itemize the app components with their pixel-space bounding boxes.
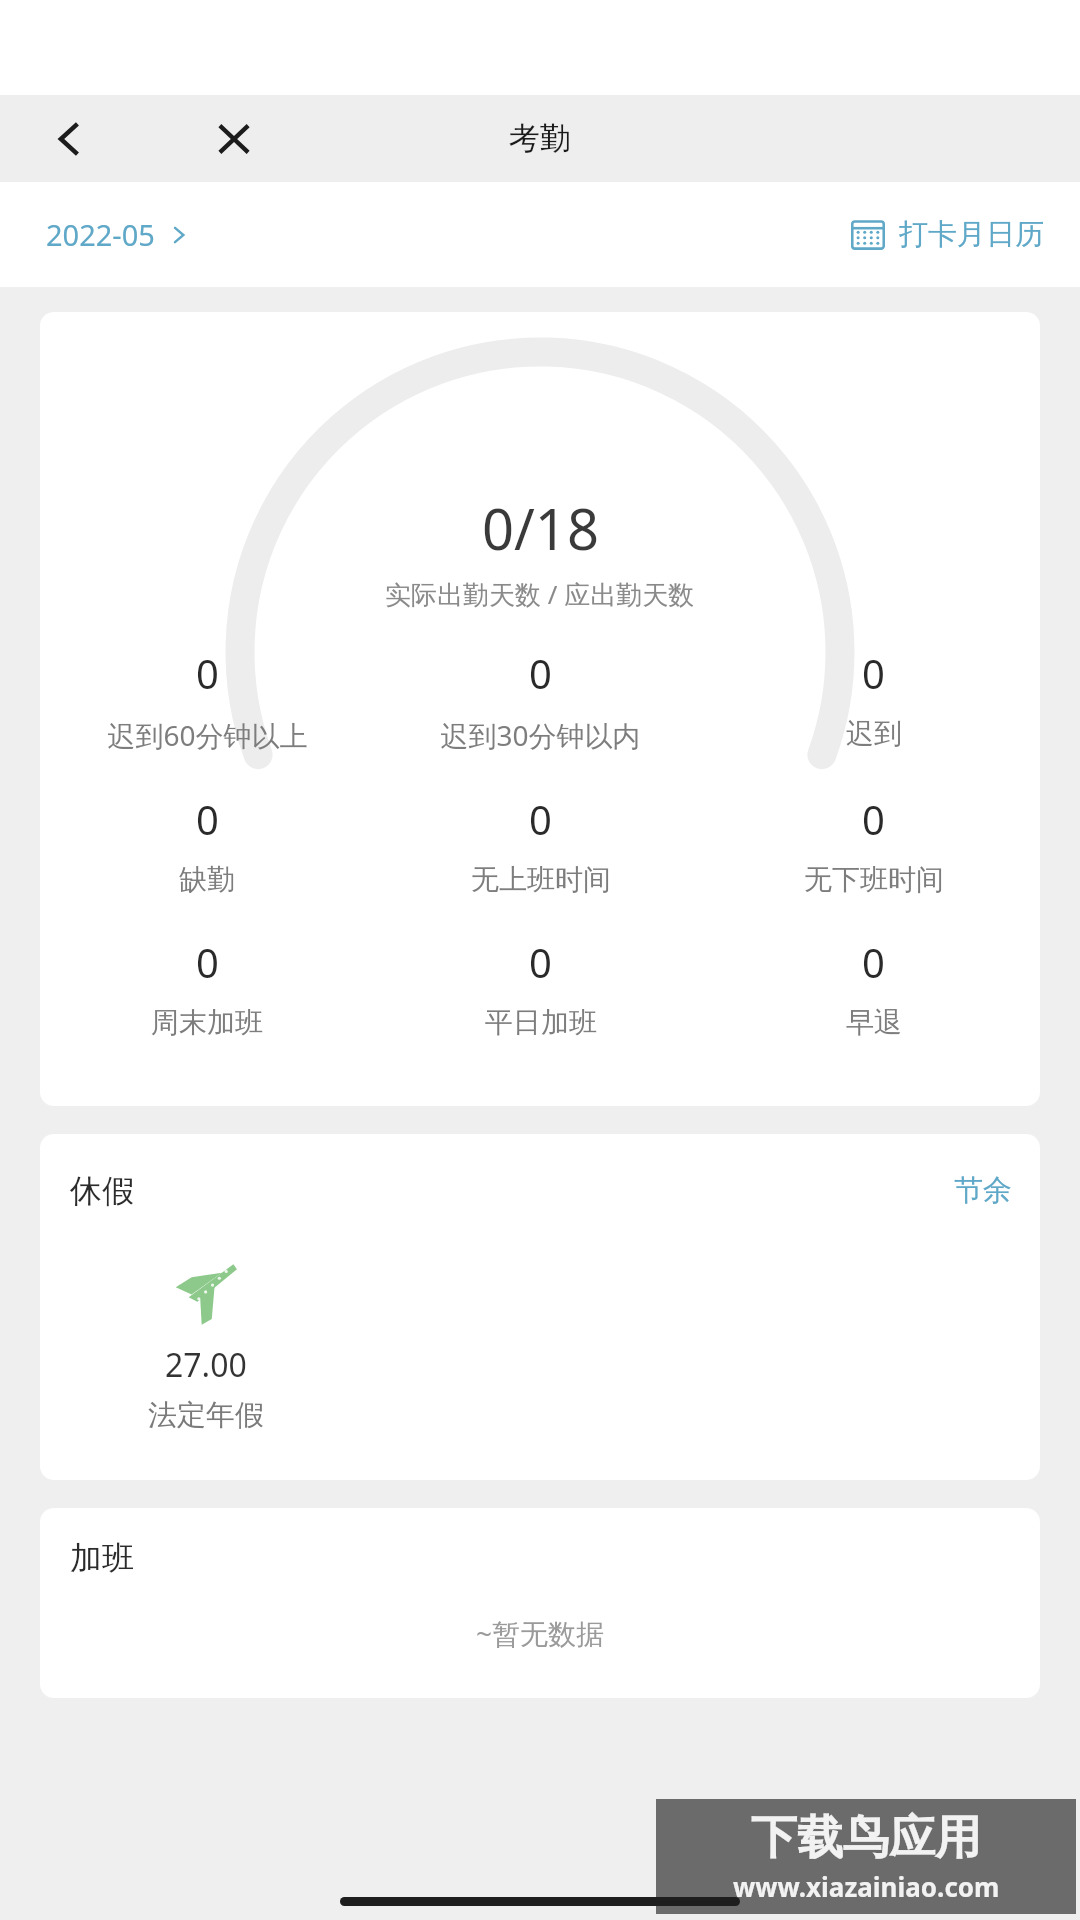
button[interactable]: 2022-05 — [30, 205, 205, 264]
button[interactable]: 0 — [374, 788, 707, 901]
staticText: 无下班时间 — [804, 862, 944, 897]
staticText: 打卡月日历 — [899, 216, 1044, 253]
button[interactable]: Back — [30, 100, 108, 178]
button[interactable]: 0 — [40, 788, 374, 901]
staticText: 0 — [862, 792, 885, 846]
staticText: 0/18 — [482, 490, 599, 566]
staticText: 周末加班 — [151, 1005, 263, 1040]
button[interactable]: 打卡月日历 — [837, 206, 1058, 263]
button[interactable]: 0 — [40, 642, 374, 758]
staticText: 缺勤 — [179, 862, 235, 897]
staticText: ~暂无数据 — [40, 1614, 1040, 1652]
staticText: 考勤 — [509, 119, 571, 158]
staticText: 实际出勤天数 / 应出勤天数 — [385, 576, 695, 612]
staticText: 迟到 — [846, 716, 902, 751]
staticText: 0 — [196, 935, 219, 989]
staticText: 0 — [862, 646, 885, 700]
staticText: www.xiazainiao.com — [733, 1869, 1000, 1904]
staticText: 迟到60分钟以上 — [107, 716, 308, 754]
staticText: 法定年假 — [148, 1397, 264, 1434]
button[interactable]: 0 — [40, 931, 374, 1044]
staticText: 加班 — [70, 1538, 134, 1578]
button[interactable]: 0 — [707, 642, 1040, 755]
button[interactable]: 0 — [707, 788, 1040, 901]
staticText: 无上班时间 — [471, 862, 611, 897]
staticText: 迟到30分钟以内 — [440, 716, 641, 754]
staticText: 下载鸟应用 — [751, 1809, 981, 1867]
button[interactable]: 0 — [374, 931, 707, 1044]
button[interactable]: 节余 — [926, 1166, 1040, 1215]
button[interactable]: 0 — [707, 931, 1040, 1044]
staticText: 早退 — [846, 1005, 902, 1040]
staticText: 0 — [196, 646, 219, 700]
staticText: 平日加班 — [485, 1005, 597, 1040]
staticText: 节余 — [954, 1172, 1012, 1209]
button[interactable]: 0 — [374, 642, 707, 758]
staticText: 0 — [196, 792, 219, 846]
staticText: 27.00 — [165, 1343, 247, 1387]
staticText: 0 — [529, 935, 552, 989]
button[interactable]: Close — [195, 100, 273, 178]
staticText: 0 — [529, 646, 552, 700]
staticText: 2022-05 — [46, 215, 155, 254]
staticText: 休假 — [70, 1171, 134, 1211]
staticText: 0 — [529, 792, 552, 846]
staticText: 0 — [862, 935, 885, 989]
